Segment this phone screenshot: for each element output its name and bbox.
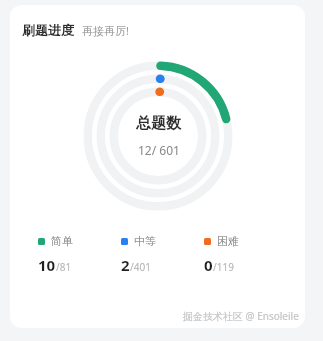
button[interactable]: 简单 bbox=[38, 234, 121, 275]
staticText: 掘金技术社区 @ Ensoleile bbox=[183, 309, 299, 323]
staticText: 12/ 601 bbox=[138, 142, 180, 158]
staticText: 再接再厉! bbox=[82, 23, 129, 38]
staticText: 0 bbox=[204, 255, 213, 275]
staticText: 简单 bbox=[51, 234, 73, 248]
staticText: /401 bbox=[130, 260, 151, 274]
staticText: 刷题进度 bbox=[22, 22, 74, 38]
button[interactable]: 困难 bbox=[204, 234, 287, 275]
button[interactable]: 刷题进度 bbox=[22, 22, 129, 38]
staticText: /119 bbox=[213, 260, 234, 274]
staticText: 中等 bbox=[134, 234, 156, 248]
staticText: 总题数 bbox=[136, 114, 181, 133]
staticText: 2 bbox=[121, 255, 130, 275]
button[interactable]: 刷题进度 bbox=[10, 5, 305, 328]
button[interactable]: 中等 bbox=[121, 234, 204, 275]
staticText: 10 bbox=[38, 255, 56, 275]
staticText: 困难 bbox=[217, 234, 239, 248]
staticText: /81 bbox=[56, 260, 72, 274]
button[interactable]: 刷题进度环形图 bbox=[82, 60, 234, 212]
